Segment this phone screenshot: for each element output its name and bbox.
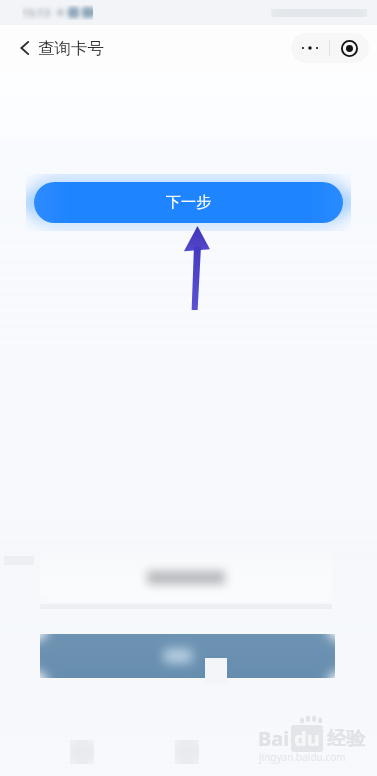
button[interactable]: 下一步 — [34, 182, 343, 223]
staticText: jingyan.baidu.com — [259, 750, 346, 764]
staticText: du — [294, 725, 320, 752]
button[interactable]: More — [291, 33, 329, 63]
staticText: 下一步 — [166, 193, 211, 212]
staticText: 15:13 — [22, 5, 51, 20]
button[interactable]: Close — [330, 33, 369, 63]
button[interactable]: Back — [8, 31, 42, 65]
staticText: 经验 — [327, 727, 365, 751]
staticText: 查询卡号 — [38, 38, 104, 59]
staticText: Bai — [258, 725, 290, 752]
